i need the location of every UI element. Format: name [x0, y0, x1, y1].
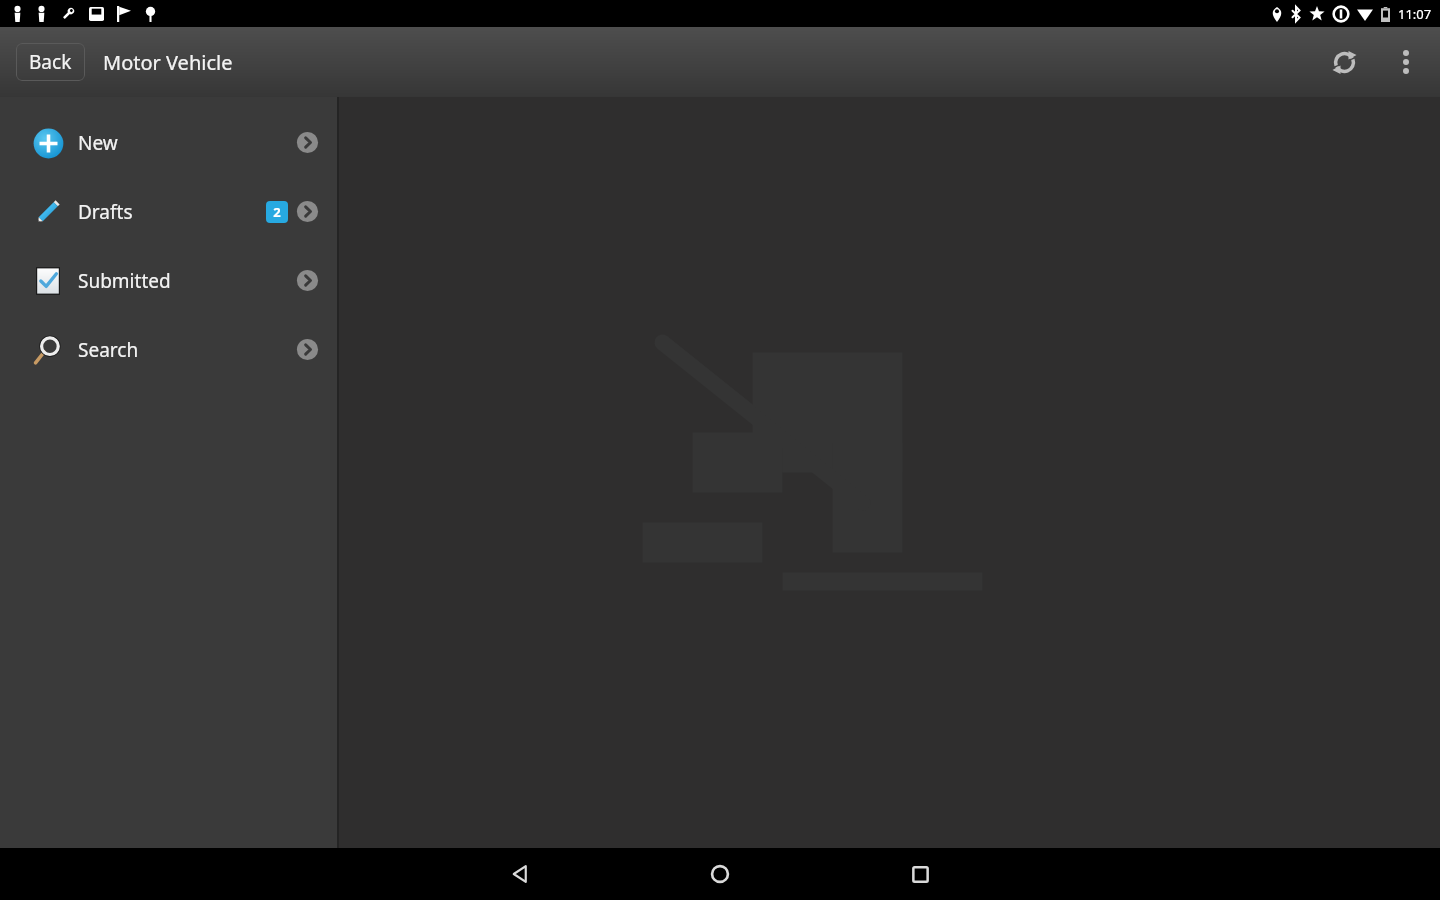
button[interactable]: Back: [420, 848, 620, 900]
staticText: Drafts: [78, 199, 133, 225]
staticText: 2: [273, 203, 281, 221]
button[interactable]: Refresh: [1320, 38, 1368, 86]
button[interactable]: Search: [0, 315, 337, 384]
button[interactable]: Recents: [820, 848, 1020, 900]
button[interactable]: Home: [620, 848, 820, 900]
staticText: Submitted: [78, 268, 171, 294]
button[interactable]: Drafts: [0, 177, 337, 246]
staticText: Back: [29, 49, 72, 75]
staticText: 11:07: [1398, 5, 1432, 23]
staticText: Search: [78, 337, 139, 363]
staticText: Motor Vehicle: [103, 49, 233, 76]
button[interactable]: Submitted: [0, 246, 337, 315]
button[interactable]: Back: [16, 43, 85, 81]
button[interactable]: New: [0, 108, 337, 177]
button[interactable]: More options: [1386, 42, 1426, 82]
staticText: New: [78, 130, 118, 156]
